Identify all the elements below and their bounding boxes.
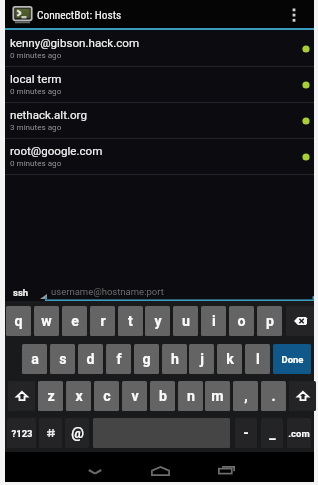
staticText: root@google.com [10,144,103,158]
button[interactable]: p [257,306,282,336]
staticText: s [59,351,67,368]
button[interactable]: Home [141,453,181,481]
button[interactable]: m [205,381,230,411]
button[interactable]: username@hostname:port [45,277,314,301]
staticText: n [187,388,195,405]
button[interactable]: . [261,381,286,411]
button[interactable]: ssh [8,278,47,299]
staticText: 0 minutes ago [10,86,62,95]
staticText: r [100,313,106,330]
staticText: c [103,388,111,405]
staticText: o [237,313,246,330]
staticText: ?123 [11,428,33,439]
button[interactable]: f [106,344,131,374]
button[interactable]: .com [287,418,311,448]
button[interactable]: d [78,344,103,374]
staticText: . [271,388,276,405]
button[interactable]: More options [283,0,305,28]
button[interactable]: _ [261,418,283,448]
button[interactable]: c [94,381,119,411]
button[interactable]: s [50,344,75,374]
button[interactable]: e [62,306,87,336]
staticText: d [86,351,95,368]
staticText: w [41,313,52,330]
button[interactable]: q [6,306,31,336]
button[interactable]: b [150,381,175,411]
button[interactable]: Shift [8,381,35,411]
staticText: 0 minutes ago [10,50,62,59]
button[interactable]: k [217,344,242,374]
button[interactable]: Done [273,344,311,374]
staticText: v [131,388,139,405]
staticText: _ [269,425,276,442]
button[interactable]: Hide keyboard [75,453,115,481]
staticText: local term [10,72,62,86]
button[interactable]: y [145,306,170,336]
button[interactable]: kenny@gibson.hack.com [5,31,314,66]
button[interactable]: @ [65,418,89,448]
button[interactable]: o [229,306,254,336]
button[interactable]: r [90,306,115,336]
button[interactable]: Input options [39,418,62,448]
staticText: b [159,388,167,405]
button[interactable]: root@google.com [5,139,314,174]
staticText: @ [71,425,84,442]
button[interactable]: ?123 [7,418,36,448]
button[interactable]: Backspace [286,306,314,336]
staticText: y [154,313,162,330]
button[interactable]: - [235,418,257,448]
staticText: ConnectBot: Hosts [37,8,122,21]
button[interactable]: z [38,381,63,411]
button[interactable]: Recent apps [208,453,248,481]
staticText: - [243,425,249,442]
staticText: q [14,313,23,330]
button[interactable]: w [34,306,59,336]
button[interactable]: v [122,381,147,411]
button[interactable]: nethack.alt.org [5,103,314,138]
staticText: k [226,351,234,368]
staticText: z [47,388,55,405]
button[interactable]: Shift [289,381,316,411]
button[interactable]: n [178,381,203,411]
staticText: g [142,351,151,368]
staticText: Done [281,354,304,365]
button[interactable]: a [22,344,47,374]
staticText: u [182,313,190,330]
button[interactable]: u [173,306,198,336]
staticText: , [244,388,248,405]
staticText: f [116,351,122,368]
staticText: .com [288,428,310,439]
staticText: e [71,313,79,330]
staticText: m [211,388,224,405]
staticText: i [212,313,216,330]
button[interactable]: g [134,344,159,374]
button[interactable]: l [245,344,270,374]
staticText: 0 minutes ago [10,158,62,167]
staticText: kenny@gibson.hack.com [10,36,140,50]
staticText: j [200,351,204,368]
staticText: h [171,351,179,368]
button[interactable]: x [66,381,91,411]
staticText: x [75,388,83,405]
staticText: username@hostname:port [51,286,164,297]
staticText: l [256,351,260,368]
button[interactable]: local term [5,67,314,102]
button[interactable]: , [233,381,258,411]
button[interactable]: j [189,344,214,374]
button[interactable]: i [201,306,226,336]
staticText: ssh [13,287,29,298]
button[interactable]: t [118,306,143,336]
staticText: p [266,313,274,330]
staticText: t [128,313,133,330]
staticText: 3 minutes ago [10,122,62,131]
staticText: a [31,351,39,368]
button[interactable]: h [162,344,187,374]
staticText: nethack.alt.org [10,108,87,122]
